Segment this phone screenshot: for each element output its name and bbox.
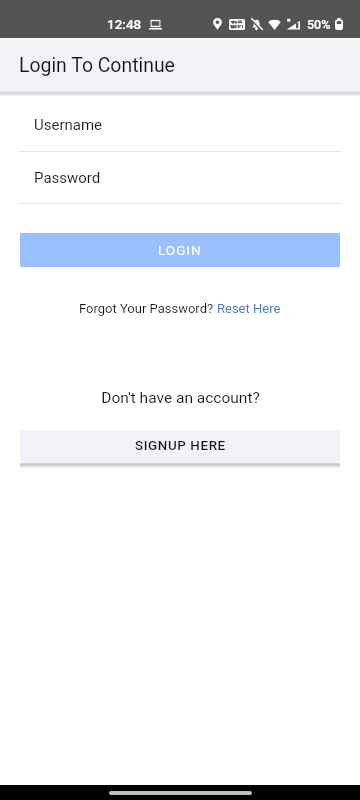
staticText: SIGNUP HERE xyxy=(135,438,226,454)
staticText: Don't have an account? xyxy=(101,389,260,407)
button[interactable]: LOGIN xyxy=(20,233,340,267)
staticText: 12:48 xyxy=(107,16,142,32)
other: Home xyxy=(109,791,252,795)
staticText: 50% xyxy=(307,17,331,32)
button[interactable]: Password xyxy=(0,152,360,204)
staticText: Forgot Your Password? xyxy=(79,301,217,316)
staticText: Login To Continue xyxy=(19,54,175,77)
button[interactable]: Username xyxy=(0,91,360,152)
staticText: Username xyxy=(34,116,103,134)
staticText: Password xyxy=(34,169,101,187)
button[interactable]: SIGNUP HERE xyxy=(20,430,340,463)
button[interactable]: Reset Here xyxy=(217,301,281,316)
staticText: LOGIN xyxy=(158,242,202,258)
